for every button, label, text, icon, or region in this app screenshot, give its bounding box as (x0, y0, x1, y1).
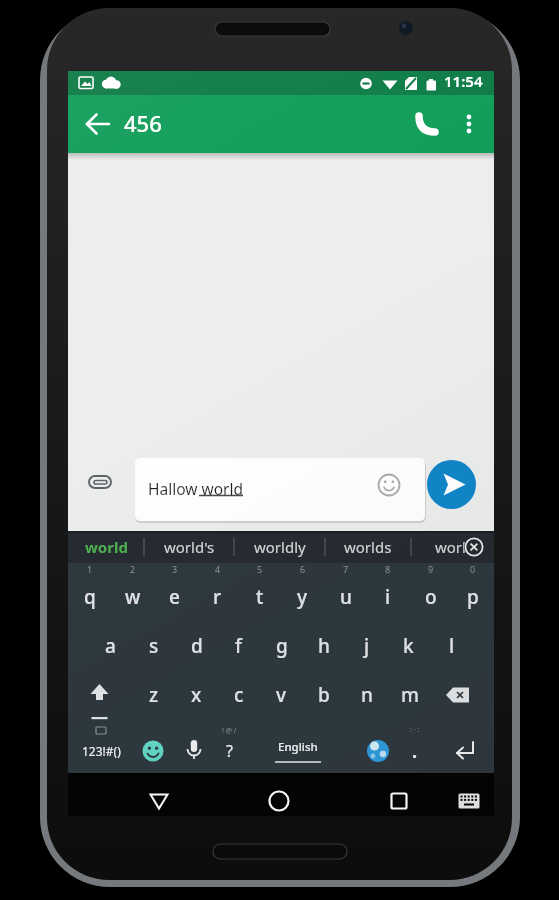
button[interactable]: work (411, 531, 494, 563)
button[interactable]: e (153, 577, 196, 617)
staticText: u (340, 584, 352, 610)
staticText: worlds (344, 537, 392, 557)
button[interactable]: English (248, 729, 348, 773)
button[interactable] (249, 781, 309, 821)
staticText: 3 (172, 563, 178, 575)
button[interactable] (68, 675, 131, 715)
staticText: work (435, 537, 471, 557)
button[interactable] (80, 462, 120, 502)
button[interactable]: world (68, 531, 144, 563)
staticText: w (125, 584, 141, 610)
button[interactable]: w (111, 577, 154, 617)
button[interactable]: k (387, 626, 430, 666)
staticText: r (213, 584, 222, 610)
staticText: z (149, 682, 159, 708)
button[interactable]: p (451, 577, 494, 617)
staticText: worldly (254, 537, 306, 557)
button[interactable] (453, 106, 485, 142)
button[interactable]: h (302, 626, 345, 666)
staticText: n (361, 682, 373, 708)
staticText: t (256, 584, 264, 610)
staticText: x (191, 682, 202, 708)
button[interactable] (358, 729, 398, 773)
button[interactable]: o (409, 577, 452, 617)
staticText: English (278, 739, 318, 755)
staticText: f (235, 633, 242, 659)
button[interactable]: q (68, 577, 111, 617)
staticText: y (297, 584, 308, 610)
staticText: s (149, 633, 159, 659)
button[interactable]: u (324, 577, 367, 617)
button[interactable]: s (132, 626, 175, 666)
button[interactable] (436, 729, 494, 773)
button[interactable]: j (345, 626, 388, 666)
button[interactable]: n (345, 675, 388, 715)
staticText: 6 (300, 563, 306, 575)
button[interactable]: world's (144, 531, 234, 563)
button[interactable]: Hallow world (135, 458, 425, 521)
staticText: d (191, 633, 203, 659)
button[interactable]: x (175, 675, 218, 715)
staticText: v (276, 682, 287, 708)
staticText: g (276, 633, 288, 659)
staticText: 5 (257, 563, 263, 575)
staticText: o (425, 584, 437, 610)
button[interactable]: d (175, 626, 218, 666)
staticText: p (467, 584, 479, 610)
staticText: Hallow world (148, 478, 243, 499)
staticText: 1 (87, 563, 93, 575)
button[interactable]: 123!#() (68, 729, 134, 773)
button[interactable]: b (302, 675, 345, 715)
staticText: e (169, 584, 180, 610)
button[interactable] (428, 675, 494, 715)
staticText: : · : (410, 725, 420, 735)
staticText: k (403, 633, 414, 659)
button[interactable] (129, 781, 189, 821)
button[interactable] (174, 729, 214, 773)
button[interactable] (427, 460, 476, 509)
staticText: 456 (124, 108, 162, 138)
staticText: a (105, 633, 116, 659)
staticText: l (449, 633, 455, 659)
staticText: 4 (215, 563, 221, 575)
staticText: m (401, 682, 419, 708)
button[interactable]: c (217, 675, 260, 715)
button[interactable]: g (260, 626, 303, 666)
staticText: . (412, 739, 418, 764)
staticText: ! @ / (222, 726, 237, 736)
button[interactable]: worldly (234, 531, 325, 563)
button[interactable]: . (398, 729, 432, 773)
button[interactable]: f (217, 626, 260, 666)
staticText: world (85, 537, 128, 557)
button[interactable] (407, 104, 447, 144)
button[interactable]: m (388, 675, 431, 715)
staticText: ? (226, 740, 233, 762)
button[interactable] (78, 104, 118, 144)
staticText: 2 (130, 563, 136, 575)
staticText: 7 (343, 563, 349, 575)
button[interactable] (369, 781, 429, 821)
staticText: c (234, 682, 244, 708)
button[interactable]: worlds (325, 531, 411, 563)
button[interactable]: v (260, 675, 303, 715)
button[interactable]: a (89, 626, 132, 666)
staticText: 11:54 (444, 71, 483, 91)
button[interactable]: ? (214, 729, 244, 773)
staticText: 123!#() (82, 743, 121, 759)
button[interactable]: r (196, 577, 239, 617)
staticText: 8 (385, 563, 391, 575)
button[interactable]: i (366, 577, 409, 617)
staticText: q (84, 584, 96, 610)
staticText: b (318, 682, 330, 708)
staticText: world's (164, 537, 215, 557)
staticText: i (385, 584, 391, 610)
staticText: 0 (470, 563, 476, 575)
button[interactable] (134, 729, 172, 773)
staticText: h (318, 633, 330, 659)
staticText: 9 (428, 563, 434, 575)
button[interactable]: z (132, 675, 175, 715)
button[interactable] (444, 781, 494, 821)
button[interactable]: l (430, 626, 473, 666)
button[interactable]: t (238, 577, 281, 617)
button[interactable]: y (281, 577, 324, 617)
